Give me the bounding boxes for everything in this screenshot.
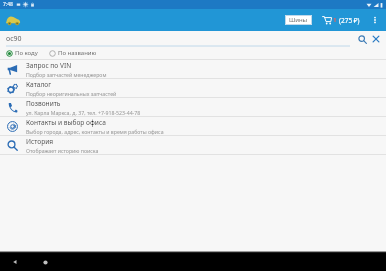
button[interactable]: Контакты и выбор офиса <box>0 117 386 135</box>
staticText: Каталог <box>26 80 52 89</box>
button[interactable]: Очистить <box>370 33 382 45</box>
button[interactable]: Логотип <box>5 12 21 28</box>
button[interactable]: Позвонить <box>0 98 386 116</box>
staticText: По названию <box>58 49 97 57</box>
button[interactable]: ос90 <box>0 31 386 47</box>
staticText: Подбор запчастей менеджером <box>26 71 107 78</box>
button[interactable]: По коду <box>5 48 39 58</box>
staticText: (275 ₽) <box>339 16 360 25</box>
button[interactable]: Каталог <box>0 79 386 97</box>
button[interactable]: Шины <box>285 15 312 25</box>
button[interactable]: По названию <box>48 48 98 58</box>
staticText: ул. Карла Маркса, д. 37, тел. +7-918-523… <box>26 109 141 116</box>
button[interactable]: Искать <box>356 33 368 45</box>
staticText: Отображает историю поиска <box>26 147 99 154</box>
staticText: Запрос по VIN <box>26 61 72 70</box>
staticText: Подбор неоригинальных запчастей <box>26 90 117 97</box>
staticText: 1 <box>333 16 337 24</box>
staticText: Шины <box>289 16 308 24</box>
button[interactable]: Запрос по VIN <box>0 60 386 78</box>
button[interactable]: 1 <box>320 13 362 27</box>
staticText: 7:48 <box>3 1 13 8</box>
staticText: Позвонить <box>26 99 61 108</box>
staticText: Выбор города, адрес, контакты и время ра… <box>26 128 164 135</box>
staticText: История <box>26 137 54 146</box>
button[interactable]: Назад <box>8 255 22 269</box>
staticText: Контакты и выбор офиса <box>26 118 106 127</box>
staticText: По коду <box>15 49 38 57</box>
button[interactable]: Домой <box>38 255 52 269</box>
staticText: ос90 <box>6 34 22 44</box>
button[interactable]: История <box>0 136 386 154</box>
button[interactable]: Ещё <box>368 13 382 27</box>
